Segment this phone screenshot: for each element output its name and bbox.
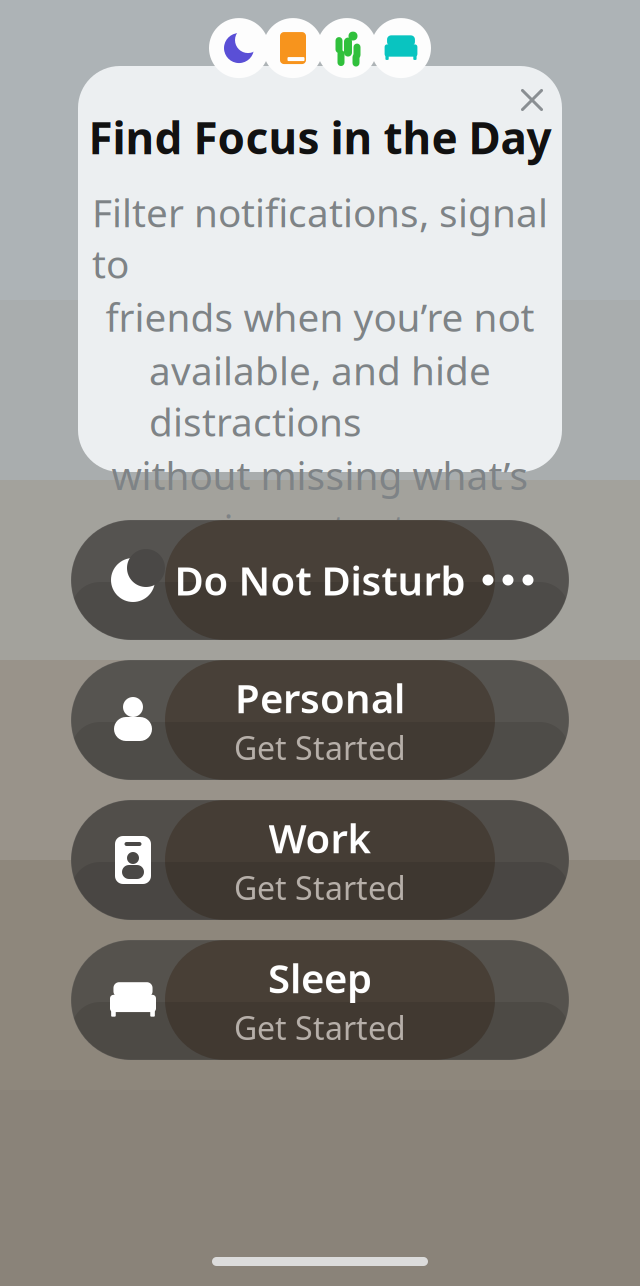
button[interactable]: Do Not Disturb <box>71 520 569 640</box>
button[interactable]: Close <box>505 73 559 127</box>
staticText: Personal <box>235 671 405 724</box>
staticText: without missing what’s <box>111 449 528 500</box>
button[interactable]: Personal <box>71 660 569 780</box>
button[interactable]: Work <box>71 800 569 920</box>
staticText: Do Not Disturb <box>174 553 465 606</box>
staticText: Find Focus in the Day <box>88 108 551 166</box>
button[interactable]: Sleep <box>71 940 569 1060</box>
staticText: Get Started <box>234 726 406 769</box>
staticText: important. <box>223 503 416 554</box>
staticText: Filter notifications, signal to <box>92 186 548 289</box>
staticText: Work <box>268 811 371 864</box>
staticText: Get Started <box>234 1006 406 1049</box>
staticText: Get Started <box>234 866 406 909</box>
staticText: friends when you’re not <box>105 291 534 342</box>
staticText: available, and hide distractions <box>149 344 491 447</box>
staticText: Sleep <box>268 951 372 1004</box>
